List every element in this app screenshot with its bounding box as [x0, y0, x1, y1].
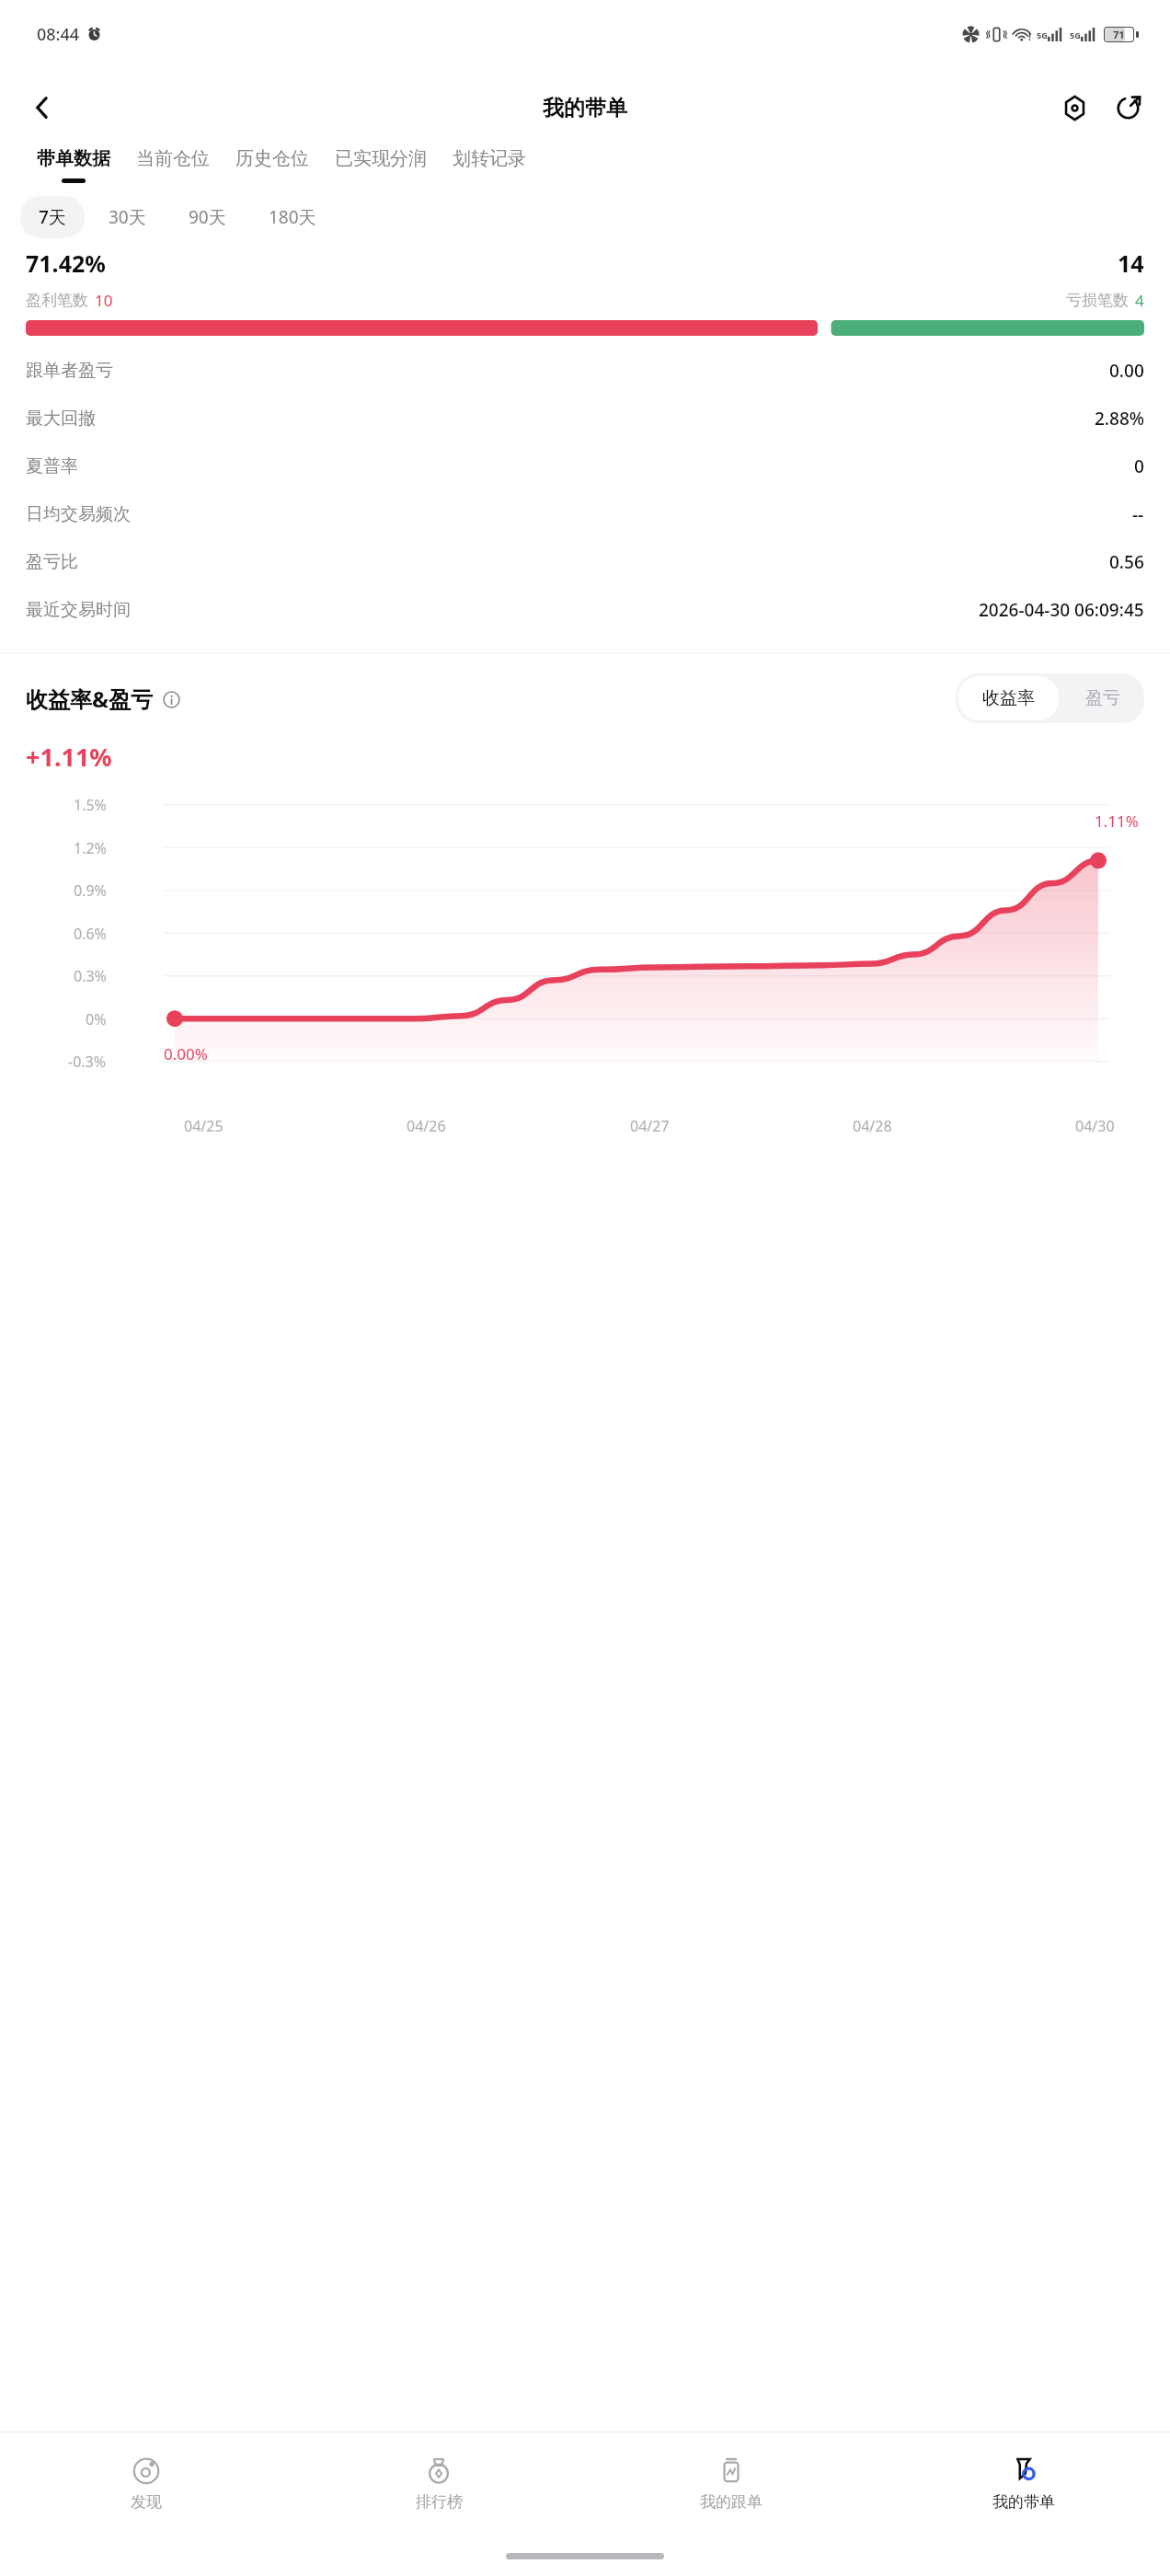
staticText: 2026-04-30 06:09:45	[979, 598, 1144, 622]
staticText: 已实现分润	[335, 147, 427, 170]
staticText: 0	[1134, 454, 1144, 478]
button[interactable]: 盈亏	[1061, 673, 1144, 723]
staticText: 2.88%	[1095, 407, 1144, 431]
staticText: 90天	[189, 205, 226, 229]
staticText: 盈亏比	[26, 551, 78, 573]
staticText: 71	[1113, 28, 1125, 41]
staticText: 0.3%	[74, 966, 107, 986]
button[interactable]: 发现	[0, 2432, 292, 2536]
staticText: 历史仓位	[235, 147, 309, 170]
staticText: 71.42%	[26, 247, 106, 279]
staticText: 04/25	[184, 1116, 224, 1136]
staticText: 0.00%	[164, 1043, 208, 1064]
staticText: 发现	[131, 2492, 162, 2512]
button[interactable]: 180天	[250, 196, 335, 238]
button[interactable]: 30天	[90, 196, 165, 238]
staticText: 0.00	[1109, 359, 1144, 383]
staticText: 7天	[39, 205, 66, 229]
button[interactable]: 收益率	[958, 676, 1059, 720]
button[interactable]: 历史仓位	[223, 147, 322, 178]
button[interactable]: 已实现分润	[322, 147, 440, 178]
staticText: 1.5%	[74, 795, 107, 815]
staticText: 04/28	[853, 1116, 892, 1136]
staticText: 盈利笔数	[26, 291, 88, 310]
staticText: 带单数据	[37, 147, 110, 170]
staticText: 04/30	[1075, 1116, 1115, 1136]
button[interactable]: 排行榜	[292, 2432, 585, 2536]
button[interactable]: 我的跟单	[585, 2432, 877, 2536]
staticText: 跟单者盈亏	[26, 360, 113, 382]
button[interactable]: Info	[160, 688, 182, 710]
staticText: --	[1132, 502, 1144, 526]
staticText: 0.6%	[74, 924, 107, 944]
staticText: 当前仓位	[136, 147, 210, 170]
staticText: 最大回撤	[26, 408, 96, 430]
button[interactable]: 带单数据	[24, 147, 123, 183]
staticText: 我的跟单	[700, 2492, 763, 2512]
staticText: 1.2%	[74, 838, 107, 858]
staticText: 0.56	[1109, 550, 1144, 574]
staticText: 收益率&盈亏	[26, 684, 153, 714]
button[interactable]: Settings	[1052, 86, 1096, 130]
button[interactable]: 7天	[20, 196, 85, 238]
staticText: 0%	[86, 1009, 107, 1029]
staticText: 14	[1118, 247, 1144, 279]
staticText: 5G	[1070, 29, 1081, 40]
staticText: 盈亏	[1085, 687, 1120, 709]
button[interactable]: 我的带单	[877, 2432, 1170, 2536]
button[interactable]: 90天	[170, 196, 245, 238]
staticText: 08:44	[37, 23, 80, 46]
staticText: 划转记录	[453, 147, 526, 170]
staticText: 夏普率	[26, 455, 78, 477]
staticText: 我的带单	[992, 2492, 1055, 2512]
staticText: +1.11%	[26, 740, 112, 774]
button[interactable]: Back	[18, 84, 66, 132]
staticText: 0.9%	[74, 880, 107, 901]
staticText: 10	[95, 290, 113, 311]
staticText: -0.3%	[68, 1052, 107, 1072]
staticText: 04/26	[407, 1116, 446, 1136]
staticText: 最近交易时间	[26, 599, 131, 621]
staticText: 30天	[109, 205, 146, 229]
staticText: 04/27	[630, 1116, 670, 1136]
staticText: 日均交易频次	[26, 503, 131, 525]
staticText: 亏损笔数	[1066, 291, 1129, 310]
button[interactable]: 当前仓位	[123, 147, 223, 178]
staticText: 1.11%	[1095, 811, 1139, 832]
staticText: 180天	[269, 205, 316, 229]
staticText: 5G	[1037, 29, 1048, 40]
staticText: 排行榜	[416, 2492, 463, 2512]
staticText: 4	[1135, 290, 1144, 311]
staticText: 我的带单	[543, 95, 627, 121]
button[interactable]: Share	[1106, 86, 1150, 130]
staticText: 收益率	[982, 687, 1035, 709]
button[interactable]: 划转记录	[440, 147, 539, 178]
